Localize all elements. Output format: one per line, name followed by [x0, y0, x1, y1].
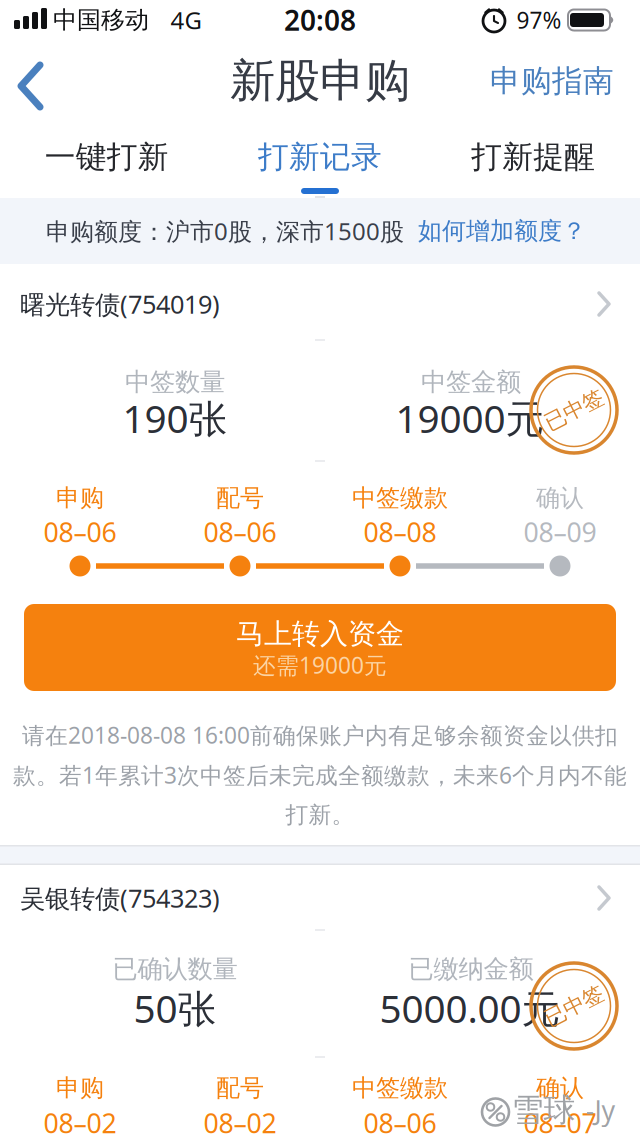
staticText: -Jy: [585, 1092, 615, 1128]
staticText: 4G: [170, 4, 201, 36]
staticText: 19000元: [395, 392, 544, 444]
staticText: 5000.00元: [379, 982, 560, 1034]
staticText: 申购额度：沪市0股，深市1500股: [46, 215, 404, 247]
button[interactable]: 一键打新: [5, 124, 209, 190]
staticText: 已缴纳金额: [408, 953, 533, 984]
staticText: 马上转入资金: [236, 617, 404, 651]
staticText: 中签缴款: [352, 1073, 448, 1103]
staticText: 还需19000元: [253, 650, 387, 680]
staticText: 配号: [216, 483, 264, 513]
staticText: 申购指南: [490, 62, 614, 100]
staticText: 确认: [536, 1073, 584, 1103]
button[interactable]: 曙光转债(754019): [0, 266, 640, 341]
button[interactable]: Back: [6, 52, 56, 118]
button[interactable]: 马上转入资金: [24, 604, 616, 691]
staticText: 配号: [216, 1073, 264, 1103]
staticText: 08–07: [523, 1105, 596, 1136]
staticText: 190张: [122, 392, 227, 444]
staticText: 申购: [56, 1073, 104, 1103]
staticText: 确认: [536, 483, 584, 513]
staticText: 08–09: [523, 514, 596, 550]
staticText: 一键打新: [45, 138, 169, 176]
button[interactable]: 吴银转债(754323): [0, 866, 640, 930]
staticText: 中签缴款: [352, 483, 448, 513]
staticText: 08–02: [203, 1105, 276, 1136]
staticText: 08–06: [363, 1105, 436, 1136]
staticText: 打新提醒: [471, 138, 595, 176]
staticText: 中签金额: [421, 366, 521, 397]
staticText: 50张: [133, 982, 216, 1034]
staticText: 新股申购: [230, 53, 410, 109]
staticText: 如何增加额度？: [418, 216, 586, 246]
staticText: 已中签: [542, 993, 605, 1019]
staticText: 中签数量: [125, 366, 225, 397]
staticText: 打新。: [285, 801, 354, 829]
button[interactable]: 打新提醒: [431, 124, 635, 190]
staticText: 97%: [516, 5, 561, 35]
button[interactable]: 如何增加额度？: [418, 216, 586, 246]
staticText: 08–02: [43, 1105, 116, 1136]
button[interactable]: 申购指南: [480, 52, 624, 110]
button[interactable]: 打新记录: [218, 124, 422, 190]
staticText: 请在2018-08-08 16:00前确保账户内有足够余额资金以供扣: [22, 720, 618, 750]
staticText: 08–06: [203, 514, 276, 550]
staticText: 吴银转债(754323): [20, 881, 220, 915]
staticText: 申购: [56, 483, 104, 513]
staticText: 08–08: [363, 514, 436, 550]
staticText: 中国移动: [53, 5, 149, 35]
staticText: 曙光转债(754019): [20, 287, 220, 321]
staticText: 打新记录: [258, 138, 382, 176]
staticText: 08–06: [43, 514, 116, 550]
staticText: 雪球: [511, 1090, 575, 1130]
staticText: 20:08: [284, 1, 356, 39]
staticText: 已中签: [542, 397, 605, 423]
staticText: 已确认数量: [112, 953, 237, 984]
staticText: 款。若1年累计3次中签后未完成全额缴款，未来6个月内不能: [13, 760, 627, 790]
